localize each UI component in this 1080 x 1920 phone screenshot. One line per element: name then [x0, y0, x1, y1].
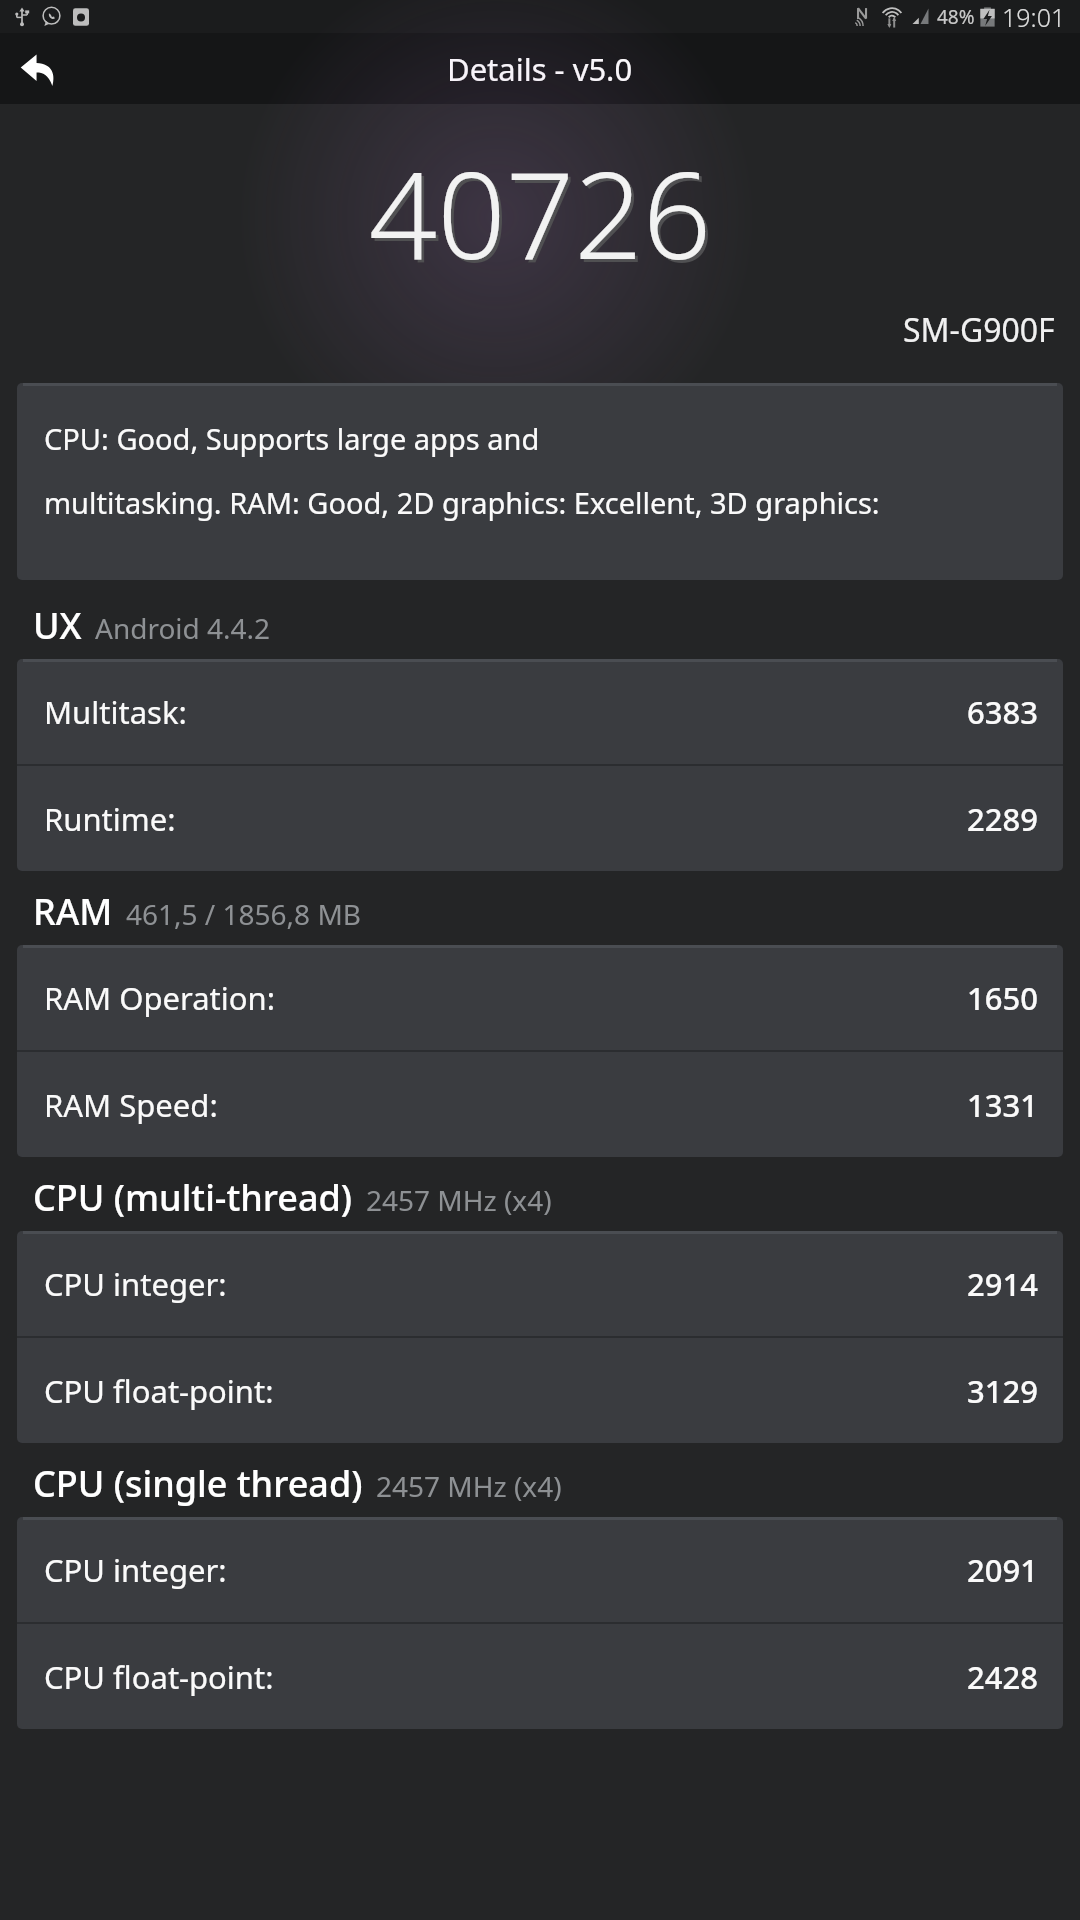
staticText: 2457 MHz (x4): [376, 1467, 562, 1505]
staticText: 40726: [3, 134, 1080, 297]
staticText: CPU (multi-thread): [33, 1173, 353, 1222]
staticText: Multitask:: [44, 691, 187, 733]
staticText: 2457 MHz (x4): [366, 1181, 552, 1219]
button[interactable]: Multitask:: [17, 659, 1063, 764]
staticText: 2289: [967, 798, 1038, 840]
staticText: multitasking. RAM: Good, 2D graphics: Ex…: [44, 483, 880, 522]
staticText: CPU integer:: [44, 1549, 227, 1591]
button[interactable]: CPU float-point:: [17, 1624, 1063, 1729]
staticText: 3129: [967, 1370, 1038, 1412]
button[interactable]: Runtime:: [17, 766, 1063, 871]
staticText: RAM: [33, 887, 113, 936]
staticText: 19:01: [1002, 0, 1066, 33]
staticText: RAM Operation:: [44, 977, 276, 1019]
staticText: 40726: [0, 131, 1080, 294]
staticText: CPU integer:: [44, 1263, 227, 1305]
staticText: 1331: [967, 1084, 1038, 1126]
button[interactable]: Back: [10, 41, 66, 97]
staticText: SM-G900F: [903, 308, 1055, 352]
staticText: 1650: [967, 977, 1038, 1019]
staticText: RAM Speed:: [44, 1084, 218, 1126]
button[interactable]: CPU: Good, Supports large apps and: [17, 383, 1063, 580]
staticText: CPU float-point:: [44, 1656, 274, 1698]
staticText: 2091: [967, 1549, 1038, 1591]
button[interactable]: RAM Operation:: [17, 945, 1063, 1050]
staticText: 2914: [967, 1263, 1038, 1305]
staticText: CPU float-point:: [44, 1370, 274, 1412]
button[interactable]: CPU integer:: [17, 1231, 1063, 1336]
staticText: Runtime:: [44, 798, 176, 840]
button[interactable]: CPU integer:: [17, 1517, 1063, 1622]
button[interactable]: CPU float-point:: [17, 1338, 1063, 1443]
staticText: CPU: Good, Supports large apps and: [44, 419, 540, 458]
staticText: 461,5 / 1856,8 MB: [126, 895, 362, 933]
staticText: CPU (single thread): [33, 1459, 363, 1508]
staticText: 48%: [937, 4, 975, 30]
button[interactable]: RAM Speed:: [17, 1052, 1063, 1157]
staticText: Android 4.4.2: [95, 609, 271, 647]
staticText: 6383: [967, 691, 1038, 733]
staticText: 2428: [967, 1656, 1038, 1698]
staticText: UX: [33, 601, 82, 650]
staticText: Details - v5.0: [447, 48, 633, 90]
